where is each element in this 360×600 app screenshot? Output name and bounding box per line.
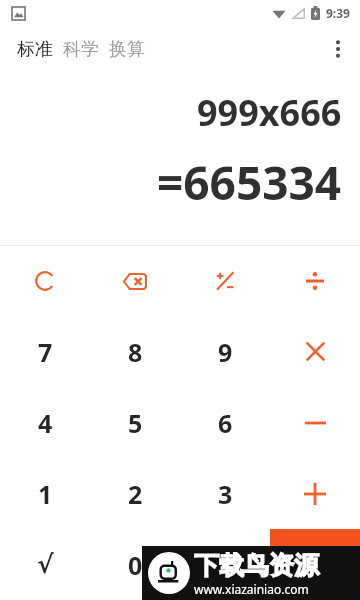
staticText: 标准 [17, 38, 53, 61]
button[interactable]: Plus minus [180, 246, 270, 316]
button[interactable]: √ [0, 529, 90, 600]
staticText: 9:39 [326, 5, 350, 21]
staticText: 下载鸟资源 [194, 550, 319, 581]
button[interactable]: 3 [180, 458, 270, 529]
staticText: 4 [38, 406, 53, 440]
button[interactable]: Minus [270, 387, 360, 458]
button[interactable]: 4 [0, 387, 90, 458]
button[interactable]: More options [316, 27, 360, 71]
button[interactable]: 2 [90, 458, 180, 529]
button[interactable]: 5 [90, 387, 180, 458]
button[interactable]: Plus [270, 458, 360, 529]
button[interactable]: 9 [180, 316, 270, 387]
button[interactable]: . [180, 529, 270, 600]
staticText: 8 [128, 335, 143, 369]
button[interactable]: Backspace [90, 246, 180, 316]
staticText: √ [37, 550, 54, 579]
button[interactable]: 标准 [12, 34, 58, 65]
staticText: 3 [218, 477, 233, 511]
button[interactable]: 7 [0, 316, 90, 387]
staticText: =665334 [157, 151, 342, 214]
staticText: 9 [218, 335, 233, 369]
staticText: 7 [38, 335, 53, 369]
button[interactable]: Clear [0, 246, 90, 316]
button[interactable]: 8 [90, 316, 180, 387]
staticText: 换算 [109, 38, 145, 61]
staticText: = [306, 544, 324, 585]
staticText: 科学 [63, 38, 99, 61]
button[interactable]: Divide [270, 246, 360, 316]
staticText: 6 [218, 406, 233, 440]
button[interactable]: 科学 [58, 34, 104, 65]
button[interactable]: Equals [270, 529, 360, 600]
button[interactable]: 换算 [104, 34, 150, 65]
button[interactable]: Multiply [270, 316, 360, 387]
staticText: 999x666 [197, 88, 342, 137]
staticText: 1 [38, 477, 53, 511]
button[interactable]: 0 [90, 529, 180, 600]
button[interactable]: 1 [0, 458, 90, 529]
button[interactable]: 6 [180, 387, 270, 458]
staticText: www.xiazainiao.com [194, 581, 309, 597]
staticText: 2 [128, 477, 143, 511]
staticText: 5 [128, 406, 143, 440]
staticText: 0 [128, 548, 143, 582]
staticText: . [221, 548, 229, 582]
